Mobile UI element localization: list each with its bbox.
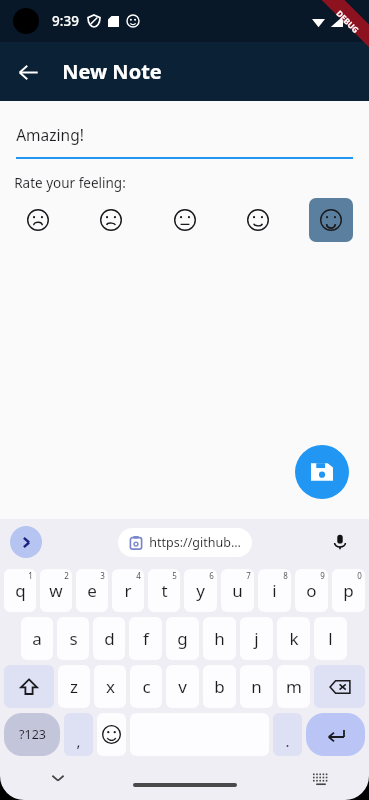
staticText: https://github… [149, 534, 241, 551]
staticText: New Note [62, 58, 162, 85]
staticText: . [285, 731, 290, 751]
button[interactable]: g [166, 617, 199, 660]
button[interactable]: k [277, 617, 310, 660]
staticText: y [196, 579, 205, 602]
staticText: 6 [209, 570, 214, 581]
staticText: 5 [172, 570, 177, 581]
staticText: h [214, 627, 225, 650]
staticText: 1 [28, 570, 33, 581]
staticText: 7 [246, 570, 251, 581]
staticText: n [251, 675, 262, 698]
button[interactable]: , [64, 713, 93, 756]
button[interactable]: v [166, 665, 199, 708]
staticText: z [70, 675, 78, 698]
button[interactable]: q [4, 569, 36, 612]
button[interactable]: Save [295, 445, 349, 499]
button[interactable]: Rating 5 [309, 198, 353, 242]
button[interactable]: https://github… [118, 528, 252, 557]
button[interactable]: a [21, 617, 53, 660]
button[interactable]: Shift [4, 665, 54, 708]
button[interactable]: e [76, 569, 108, 612]
staticText: q [15, 579, 26, 602]
staticText: o [306, 579, 317, 602]
button[interactable]: m [277, 665, 310, 708]
staticText: , [76, 731, 81, 751]
staticText: 0 [357, 570, 362, 581]
staticText: ?123 [19, 726, 46, 743]
button[interactable]: Rating 1 [16, 198, 60, 242]
staticText: d [104, 627, 115, 650]
staticText: 9 [320, 570, 325, 581]
button[interactable]: d [93, 617, 125, 660]
staticText: m [286, 675, 302, 698]
staticText: 8 [283, 570, 288, 581]
button[interactable]: c [130, 665, 162, 708]
staticText: Amazing! [16, 124, 84, 145]
button[interactable]: Hide keyboard [44, 764, 72, 792]
button[interactable]: r [112, 569, 144, 612]
button[interactable]: Backspace [314, 665, 365, 708]
staticText: r [124, 579, 132, 602]
button[interactable]: Rating 4 [236, 198, 280, 242]
staticText: i [272, 579, 277, 602]
button[interactable]: f [129, 617, 162, 660]
button[interactable]: j [240, 617, 273, 660]
staticText: g [177, 627, 188, 650]
button[interactable]: p [332, 569, 365, 612]
button[interactable]: Voice input [325, 527, 355, 557]
staticText: l [328, 627, 333, 650]
button[interactable]: i [258, 569, 291, 612]
staticText: p [343, 579, 354, 602]
staticText: c [142, 675, 151, 698]
button[interactable]: w [40, 569, 72, 612]
button[interactable]: Emoji [97, 713, 126, 756]
button[interactable]: b [203, 665, 236, 708]
button[interactable]: s [57, 617, 89, 660]
staticText: 3 [100, 570, 105, 581]
button[interactable]: . [273, 713, 302, 756]
staticText: w [49, 579, 63, 602]
button[interactable]: y [184, 569, 217, 612]
staticText: 9:39 [52, 12, 79, 30]
button[interactable]: Rating 2 [89, 198, 133, 242]
staticText: u [232, 579, 243, 602]
staticText: j [254, 627, 259, 650]
button[interactable]: x [94, 665, 126, 708]
button[interactable]: n [240, 665, 273, 708]
staticText: e [87, 579, 97, 602]
button[interactable]: Enter [306, 713, 365, 756]
button[interactable]: u [221, 569, 254, 612]
button[interactable]: h [203, 617, 236, 660]
staticText: DEBUG [334, 8, 362, 35]
staticText: Rate your feeling: [14, 174, 126, 192]
staticText: t [161, 579, 168, 602]
staticText: s [69, 627, 78, 650]
button[interactable]: z [58, 665, 90, 708]
button[interactable]: Back [4, 48, 52, 96]
button[interactable]: Change keyboard [307, 764, 335, 792]
staticText: f [143, 627, 149, 650]
staticText: v [178, 675, 187, 698]
button[interactable]: o [295, 569, 328, 612]
button[interactable]: ?123 [4, 713, 60, 756]
button[interactable]: l [314, 617, 347, 660]
staticText: b [214, 675, 225, 698]
button[interactable]: t [148, 569, 180, 612]
staticText: 4 [136, 570, 141, 581]
staticText: k [289, 627, 299, 650]
button[interactable]: More suggestions [10, 526, 42, 558]
staticText: a [32, 627, 42, 650]
button[interactable]: Rating 3 [163, 198, 207, 242]
staticText: x [106, 675, 115, 698]
staticText: 2 [64, 570, 69, 581]
